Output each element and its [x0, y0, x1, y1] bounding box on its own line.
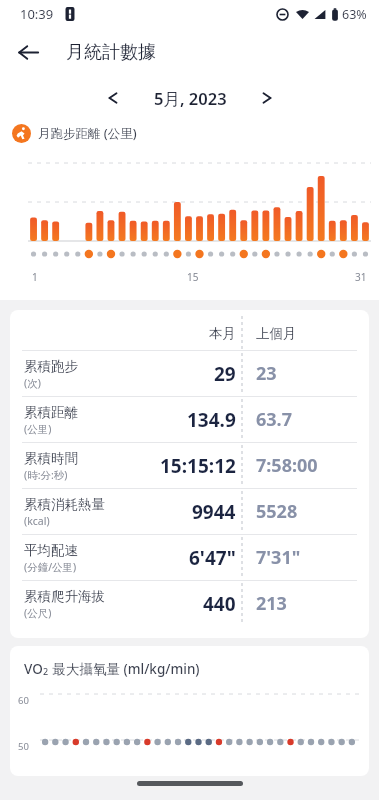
- staticText: VO: [24, 660, 43, 678]
- button[interactable]: Back: [8, 32, 48, 72]
- staticText: 31: [355, 270, 367, 284]
- staticText: 134.9: [187, 407, 236, 433]
- staticText: 60: [18, 694, 29, 707]
- staticText: 累積時間: [24, 450, 78, 467]
- staticText: (kcal): [24, 514, 50, 528]
- staticText: 50: [18, 740, 29, 753]
- staticText: 7'31": [256, 545, 301, 570]
- staticText: 213: [256, 591, 287, 616]
- staticText: 平均配速: [24, 542, 78, 559]
- button[interactable]: 累積爬升海拔: [10, 581, 369, 626]
- staticText: 5月, 2023: [154, 87, 227, 110]
- staticText: 累積消耗熱量: [24, 496, 105, 513]
- staticText: 15: [187, 270, 199, 284]
- staticText: (次): [24, 376, 41, 390]
- staticText: 9944: [192, 499, 236, 525]
- staticText: 29: [214, 361, 236, 387]
- staticText: 63%: [342, 6, 367, 23]
- staticText: 累積距離: [24, 404, 78, 421]
- staticText: 最大攝氧量 (ml/kg/min): [49, 660, 200, 678]
- staticText: 累積爬升海拔: [24, 588, 105, 605]
- staticText: 月跑步距離 (公里): [38, 125, 137, 142]
- button[interactable]: 累積時間: [10, 443, 369, 488]
- button[interactable]: 累積距離: [10, 397, 369, 442]
- staticText: (分鐘/公里): [24, 560, 77, 574]
- staticText: (時:分:秒): [24, 468, 68, 482]
- staticText: (公里): [24, 422, 52, 436]
- staticText: 440: [203, 591, 236, 617]
- staticText: 5528: [256, 499, 298, 524]
- staticText: 月統計數據: [66, 41, 156, 64]
- button[interactable]: Previous month: [96, 81, 130, 115]
- button[interactable]: 平均配速: [10, 535, 369, 580]
- staticText: 6'47": [189, 545, 236, 571]
- staticText: 15:15:12: [160, 453, 236, 479]
- staticText: 2: [43, 665, 49, 677]
- staticText: (公尺): [24, 606, 52, 620]
- button[interactable]: 累積消耗熱量: [10, 489, 369, 534]
- staticText: 63.7: [256, 407, 292, 432]
- staticText: 7:58:00: [256, 453, 318, 478]
- staticText: 1: [32, 270, 38, 284]
- staticText: 10:39: [20, 5, 54, 23]
- staticText: 本月: [209, 325, 236, 342]
- button[interactable]: 累積跑步: [10, 351, 369, 396]
- button[interactable]: Next month: [250, 81, 284, 115]
- staticText: 23: [256, 361, 277, 386]
- staticText: 上個月: [256, 325, 297, 342]
- staticText: 累積跑步: [24, 358, 78, 375]
